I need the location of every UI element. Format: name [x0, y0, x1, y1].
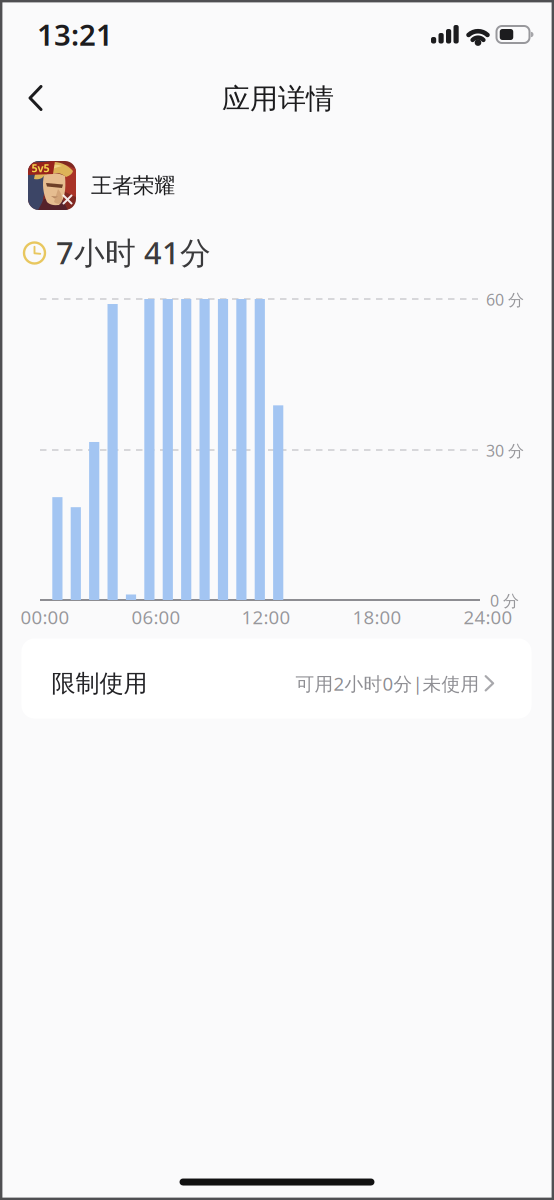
staticText: 24:00	[463, 605, 512, 629]
staticText: 王者荣耀	[91, 172, 175, 199]
staticText: 13:21	[37, 15, 113, 54]
staticText: 12:00	[241, 605, 290, 629]
staticText: 60 分	[486, 289, 524, 310]
staticText: 06:00	[131, 605, 180, 629]
button[interactable]: Back	[14, 71, 57, 125]
staticText: 30 分	[486, 440, 524, 461]
staticText: 00:00	[20, 605, 69, 629]
button[interactable]: 限制使用	[21, 638, 531, 718]
staticText: 限制使用	[51, 669, 147, 698]
staticText: 应用详情	[222, 82, 334, 116]
staticText: 5v5	[31, 161, 49, 175]
staticText: 可用2小时0分|未使用	[295, 671, 479, 696]
staticText: 0 分	[490, 590, 519, 611]
staticText: 7小时 41分	[56, 232, 211, 273]
staticText: 18:00	[352, 605, 401, 629]
